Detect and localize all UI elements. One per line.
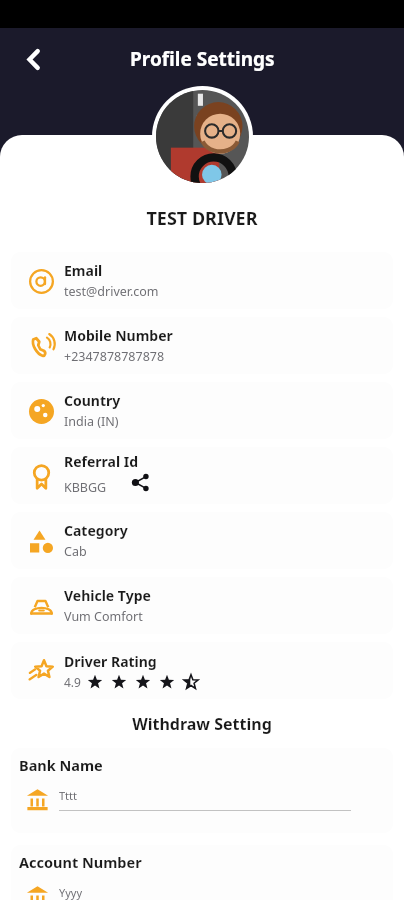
button[interactable]: Share referral id [127, 469, 153, 495]
staticText: Bank Name [19, 755, 103, 775]
button[interactable]: Profile photo [156, 90, 249, 183]
staticText: Email [64, 261, 103, 280]
staticText: Account Number [19, 852, 142, 872]
button[interactable]: Mobile Number [11, 317, 393, 374]
staticText: Cab [64, 543, 87, 560]
staticText: KBBGG [64, 479, 107, 496]
button[interactable]: Category [11, 512, 393, 569]
staticText: TEST DRIVER [0, 206, 404, 231]
staticText: Tttt [59, 788, 78, 803]
button[interactable]: Email [11, 252, 393, 309]
button[interactable]: Back [10, 36, 56, 82]
staticText: 4.9 [64, 674, 81, 690]
staticText: Driver Rating [64, 652, 157, 671]
staticText: Yyyy [59, 885, 83, 900]
staticText: Country [64, 391, 121, 410]
staticText: Vehicle Type [64, 586, 151, 605]
staticText: +2347878787878 [64, 348, 165, 365]
button[interactable]: Vehicle Type [11, 577, 393, 634]
button[interactable]: Account Number [11, 845, 393, 900]
staticText: India (IN) [64, 413, 119, 430]
staticText: Vum Comfort [64, 608, 143, 625]
button[interactable]: Referral Id [11, 447, 393, 504]
staticText: test@driver.com [64, 283, 159, 300]
staticText: Referral Id [64, 452, 139, 471]
staticText: Mobile Number [64, 326, 173, 345]
button[interactable]: Bank Name [11, 748, 393, 833]
button[interactable]: Driver Rating [11, 642, 393, 699]
staticText: Category [64, 521, 128, 540]
button[interactable]: Country [11, 382, 393, 439]
staticText: Withdraw Setting [0, 713, 404, 735]
staticText: Profile Settings [130, 46, 275, 72]
